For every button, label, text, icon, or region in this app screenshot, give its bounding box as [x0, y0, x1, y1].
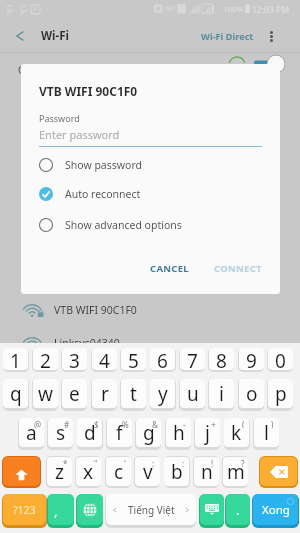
staticText: Show advanced options — [65, 218, 182, 232]
button[interactable]: ?123 — [3, 494, 46, 525]
button[interactable]: m — [223, 457, 248, 486]
button[interactable]: Wi-Fi Direct — [197, 20, 258, 52]
button[interactable]: More options — [262, 20, 280, 52]
button[interactable]: 9 — [239, 348, 264, 370]
button[interactable]: s — [48, 418, 73, 447]
button[interactable]: q — [3, 379, 28, 408]
button[interactable]: Linksys04340 — [0, 326, 300, 360]
button[interactable]: . — [226, 494, 250, 525]
staticText: b — [171, 459, 183, 485]
staticText: 0 — [275, 348, 286, 370]
button[interactable]: a — [19, 418, 44, 447]
button[interactable]: b — [164, 457, 189, 486]
staticText: ! — [211, 458, 214, 467]
staticText: 1 — [10, 348, 21, 370]
staticText: 5 — [128, 348, 139, 370]
button[interactable]: n — [194, 457, 219, 486]
button[interactable]: d — [77, 418, 102, 447]
staticText: j — [205, 420, 210, 446]
staticText: @ — [34, 419, 42, 428]
staticText: ' — [124, 458, 126, 467]
staticText: h — [173, 420, 185, 446]
staticText: a — [26, 420, 37, 446]
button[interactable]: 2 — [33, 348, 58, 370]
staticText: k — [231, 420, 242, 446]
button[interactable]: 6 — [150, 348, 175, 370]
staticText: . — [236, 501, 240, 519]
button[interactable]: y — [150, 379, 175, 408]
button[interactable]: 3 — [62, 348, 87, 370]
button[interactable]: 7 — [180, 348, 205, 370]
staticText: ?123 — [13, 503, 36, 517]
staticText: v — [143, 459, 153, 485]
staticText: Wi-Fi — [41, 28, 69, 44]
staticText: u — [187, 381, 199, 407]
staticText: o — [246, 381, 258, 407]
staticText: p — [275, 381, 287, 407]
button[interactable]: u — [180, 379, 205, 408]
staticText: s — [56, 420, 66, 446]
staticText: CONNECT — [214, 262, 262, 275]
button[interactable]: Backspace — [260, 457, 297, 486]
button[interactable]: Wi-Fi on — [226, 54, 284, 76]
button[interactable]: l — [254, 418, 279, 447]
button[interactable]: CONNECT — [205, 256, 271, 281]
staticText: ( — [242, 419, 245, 428]
button[interactable]: j — [195, 418, 220, 447]
button[interactable]: 8 — [209, 348, 234, 370]
button[interactable]: r — [92, 379, 117, 408]
staticText: w — [38, 381, 53, 407]
button[interactable]: f — [107, 418, 132, 447]
button[interactable]: Done — [253, 494, 298, 525]
button[interactable]: Auto reconnect — [21, 183, 280, 205]
button[interactable]: 1 — [3, 348, 28, 370]
button[interactable]: p — [268, 379, 293, 408]
staticText: z — [55, 459, 64, 485]
staticText: 6 — [157, 348, 168, 370]
button[interactable]: 5 — [121, 348, 146, 370]
staticText: $ — [94, 419, 99, 428]
staticText: 3 — [69, 348, 80, 370]
staticText: x — [83, 459, 94, 485]
button[interactable]: x — [76, 457, 101, 486]
button[interactable]: z — [47, 457, 72, 486]
staticText: 2 — [40, 348, 51, 370]
staticText: , — [54, 502, 58, 520]
button[interactable]: 0 — [268, 348, 293, 370]
staticText: % — [122, 419, 129, 428]
button[interactable]: CANCEL — [141, 256, 198, 281]
staticText: # — [64, 419, 70, 428]
staticText: Wi-Fi Direct — [201, 30, 254, 43]
button[interactable]: , — [48, 494, 74, 525]
staticText: e — [69, 381, 80, 407]
button[interactable]: v — [135, 457, 160, 486]
button[interactable]: w — [33, 379, 58, 408]
button[interactable]: o — [239, 379, 264, 408]
button[interactable]: Change language — [77, 494, 103, 525]
staticText: f — [116, 420, 123, 446]
button[interactable]: Show advanced options — [21, 214, 280, 236]
staticText: 9 — [246, 348, 257, 370]
staticText: VTB WIFI 90C1F0 — [54, 303, 137, 317]
button[interactable]: i — [209, 379, 234, 408]
staticText: - — [183, 419, 186, 428]
staticText: CANCEL — [150, 262, 189, 275]
staticText: 4 — [99, 348, 110, 370]
button[interactable]: h — [166, 418, 191, 447]
button[interactable]: Back — [7, 20, 33, 52]
button[interactable]: Hide keyboard — [200, 494, 224, 525]
button[interactable]: Show password — [21, 154, 280, 176]
button[interactable]: 4 — [92, 348, 117, 370]
staticText: d — [84, 420, 96, 446]
button[interactable]: g — [136, 418, 161, 447]
button[interactable]: k — [224, 418, 249, 447]
staticText: 100% — [223, 4, 244, 15]
button[interactable]: e — [62, 379, 87, 408]
button[interactable]: t — [121, 379, 146, 408]
button[interactable]: c — [106, 457, 131, 486]
staticText: " — [94, 458, 98, 467]
button[interactable]: VTB WIFI 90C1F0 — [0, 293, 300, 327]
button[interactable]: Shift — [3, 457, 40, 486]
button[interactable]: Space — [106, 494, 196, 525]
staticText: Auto reconnect — [65, 187, 141, 201]
